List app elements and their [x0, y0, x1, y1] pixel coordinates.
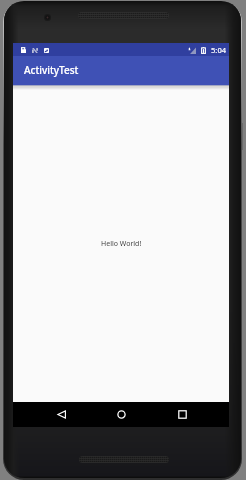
button[interactable]: ActivityTest — [13, 56, 229, 85]
staticText: Hello World! — [101, 239, 142, 249]
button[interactable]: Recents — [156, 402, 208, 427]
button[interactable]: Home — [87, 402, 156, 427]
staticText: ActivityTest — [24, 63, 79, 77]
button[interactable]: Back — [35, 402, 87, 427]
staticText: 5:04 — [211, 45, 227, 55]
